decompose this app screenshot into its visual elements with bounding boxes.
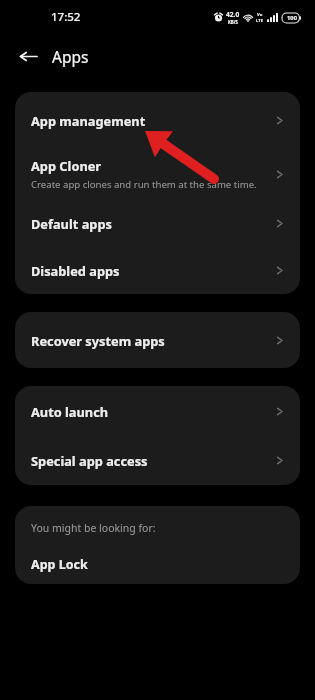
button[interactable]: Recover system apps (15, 312, 300, 368)
staticText: You might be looking for: (31, 521, 156, 535)
staticText: Recover system apps (31, 332, 165, 349)
staticText: Auto launch (31, 403, 109, 420)
button[interactable]: Special app access (15, 436, 300, 485)
staticText: 100 (287, 14, 297, 22)
staticText: KB/S (228, 19, 238, 25)
button[interactable]: Default apps (15, 200, 300, 246)
button[interactable]: App Cloner (15, 148, 300, 200)
button[interactable]: Auto launch (15, 386, 300, 436)
staticText: App Lock (31, 556, 88, 573)
button[interactable]: App Lock (15, 549, 300, 579)
staticText: Default apps (31, 215, 112, 232)
staticText: LTE (256, 18, 264, 24)
staticText: 42.0 (226, 10, 240, 19)
staticText: App management (31, 112, 146, 129)
staticText: Apps (52, 46, 89, 67)
button[interactable]: Back (12, 40, 44, 72)
button[interactable]: App management (15, 92, 300, 148)
staticText: Disabled apps (31, 262, 120, 279)
staticText: 17:52 (51, 9, 81, 25)
staticText: Create app clones and run them at the sa… (31, 178, 257, 191)
staticText: Special app access (31, 452, 148, 469)
button[interactable]: Disabled apps (15, 246, 300, 294)
staticText: Vo (257, 12, 263, 18)
staticText: App Cloner (31, 157, 102, 174)
